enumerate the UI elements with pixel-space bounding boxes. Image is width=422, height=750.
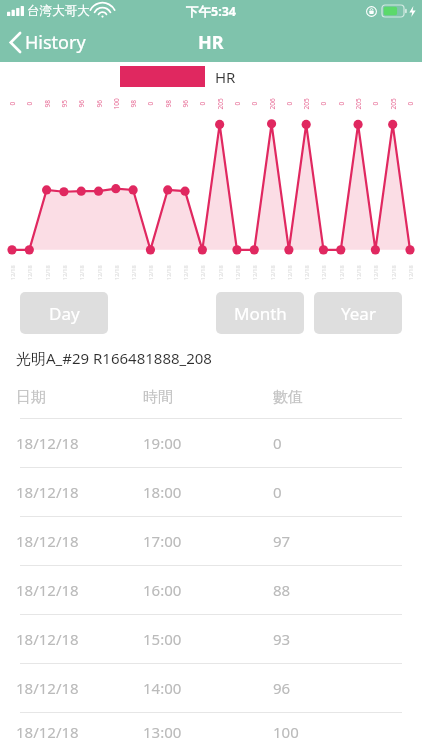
staticText: 96: [76, 99, 85, 107]
staticText: 12/18: [26, 265, 33, 280]
staticText: 98: [163, 99, 172, 107]
staticText: 下午5:34: [186, 3, 236, 20]
staticText: 18/12/18: [16, 580, 79, 600]
staticText: 12/18: [234, 265, 241, 280]
staticText: 日期: [16, 388, 46, 407]
staticText: 12/18: [78, 265, 85, 280]
staticText: 12/18: [338, 265, 345, 280]
staticText: 0: [232, 101, 241, 105]
staticText: 93: [273, 629, 291, 649]
staticText: 12/18: [113, 265, 120, 280]
staticText: 16:00: [143, 580, 182, 600]
staticText: HR: [215, 67, 236, 87]
staticText: 數值: [273, 388, 303, 407]
staticText: 0: [370, 101, 379, 105]
staticText: 96: [94, 99, 103, 107]
button[interactable]: Day: [20, 292, 108, 334]
button[interactable]: 18/12/18: [0, 468, 422, 516]
staticText: 台湾大哥大: [27, 3, 90, 19]
staticText: 12/18: [61, 265, 68, 280]
staticText: 96: [180, 99, 189, 107]
staticText: 96: [273, 678, 291, 698]
staticText: 13:00: [143, 722, 182, 742]
button[interactable]: 18/12/18: [0, 517, 422, 565]
staticText: 14:00: [143, 678, 182, 698]
staticText: 0: [249, 101, 258, 105]
staticText: 205: [388, 97, 397, 109]
staticText: 12/18: [9, 265, 16, 280]
staticText: 12/18: [286, 265, 293, 280]
staticText: 18:00: [143, 482, 182, 502]
staticText: 18/12/18: [16, 678, 79, 698]
staticText: 205: [215, 97, 224, 109]
staticText: 100: [111, 97, 120, 109]
staticText: 19:00: [143, 433, 182, 453]
staticText: 100: [273, 722, 299, 742]
staticText: 0: [7, 101, 16, 105]
staticText: 12/18: [217, 265, 224, 280]
staticText: 光明A_#29 R166481888_208: [16, 348, 212, 368]
button[interactable]: 18/12/18: [0, 566, 422, 614]
staticText: 205: [353, 97, 362, 109]
staticText: 88: [273, 580, 291, 600]
staticText: 12/18: [320, 265, 327, 280]
staticText: 12/18: [165, 265, 172, 280]
staticText: 12/18: [96, 265, 103, 280]
staticText: 18/12/18: [16, 722, 79, 742]
button[interactable]: 18/12/18: [0, 615, 422, 663]
staticText: 18/12/18: [16, 531, 79, 551]
staticText: 0: [273, 482, 282, 502]
button[interactable]: Month: [216, 292, 304, 334]
staticText: 12/18: [407, 265, 414, 280]
staticText: 12/18: [372, 265, 379, 280]
staticText: 12/18: [44, 265, 51, 280]
staticText: 205: [301, 97, 310, 109]
staticText: 95: [59, 99, 68, 107]
staticText: 97: [273, 531, 291, 551]
staticText: Year: [341, 302, 376, 325]
staticText: 0: [24, 101, 33, 105]
staticText: 98: [42, 99, 51, 107]
button[interactable]: 18/12/18: [0, 419, 422, 467]
staticText: 12/18: [269, 265, 276, 280]
staticText: 18/12/18: [16, 629, 79, 649]
staticText: 12/18: [147, 265, 154, 280]
button[interactable]: History: [0, 26, 96, 59]
staticText: 12/18: [182, 265, 189, 280]
staticText: 12/18: [355, 265, 362, 280]
staticText: History: [25, 30, 86, 55]
staticText: 17:00: [143, 531, 182, 551]
staticText: 0: [405, 101, 414, 105]
staticText: 0: [318, 101, 327, 105]
staticText: HR: [198, 30, 224, 55]
staticText: 時間: [143, 388, 173, 407]
staticText: 12/18: [303, 265, 310, 280]
staticText: 0: [284, 101, 293, 105]
button[interactable]: Year: [314, 292, 402, 334]
staticText: 12/18: [390, 265, 397, 280]
button[interactable]: 18/12/18: [0, 664, 422, 712]
staticText: Day: [49, 302, 80, 325]
staticText: 12/18: [251, 265, 258, 280]
staticText: 12/18: [130, 265, 137, 280]
staticText: 18/12/18: [16, 482, 79, 502]
staticText: 0: [273, 433, 282, 453]
staticText: 18/12/18: [16, 433, 79, 453]
staticText: 0: [197, 101, 206, 105]
staticText: Month: [234, 302, 287, 325]
staticText: 0: [145, 101, 154, 105]
staticText: 0: [336, 101, 345, 105]
button[interactable]: 18/12/18: [0, 713, 422, 750]
staticText: 206: [267, 97, 276, 109]
staticText: 15:00: [143, 629, 182, 649]
staticText: 98: [128, 99, 137, 107]
staticText: 12/18: [199, 265, 206, 280]
